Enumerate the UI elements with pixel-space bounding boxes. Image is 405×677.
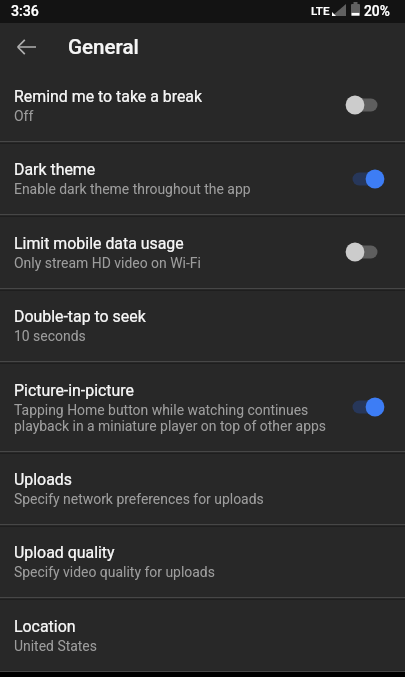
button[interactable]: Location — [0, 598, 405, 672]
button[interactable]: Toggle on — [343, 159, 387, 199]
staticText: 20% — [364, 3, 390, 19]
button[interactable]: Upload quality — [0, 525, 405, 598]
button[interactable]: Toggle on — [343, 387, 387, 427]
button[interactable]: Toggle off — [343, 85, 387, 125]
button[interactable]: Limit mobile data usage — [0, 215, 405, 289]
button[interactable]: Double-tap to seek — [0, 289, 405, 362]
staticText: Enable dark theme throughout the app — [14, 181, 251, 197]
staticText: Picture-in-picture — [14, 381, 134, 400]
staticText: Only stream HD video on Wi-Fi — [14, 255, 201, 271]
staticText: Dark theme — [14, 160, 96, 179]
button[interactable]: Back — [9, 30, 43, 64]
button[interactable]: Picture-in-picture — [0, 362, 405, 452]
button[interactable]: Toggle off — [343, 232, 387, 272]
staticText: Specify network preferences for uploads — [14, 491, 264, 507]
staticText: Limit mobile data usage — [14, 234, 184, 253]
staticText: Uploads — [14, 470, 72, 489]
button[interactable]: Uploads — [0, 452, 405, 525]
staticText: Tapping Home button while watching conti… — [14, 402, 327, 434]
staticText: United States — [14, 638, 97, 654]
staticText: LTE — [311, 4, 330, 18]
staticText: Upload quality — [14, 543, 115, 562]
staticText: Remind me to take a break — [14, 87, 203, 106]
staticText: Double-tap to seek — [14, 307, 146, 326]
staticText: Off — [14, 108, 34, 124]
staticText: General — [68, 35, 139, 59]
staticText: 10 seconds — [14, 328, 86, 344]
button[interactable]: Remind me to take a break — [0, 68, 405, 142]
staticText: Location — [14, 617, 76, 636]
button[interactable]: Dark theme — [0, 142, 405, 215]
staticText: 3:36 — [11, 3, 39, 20]
staticText: Specify video quality for uploads — [14, 564, 215, 580]
